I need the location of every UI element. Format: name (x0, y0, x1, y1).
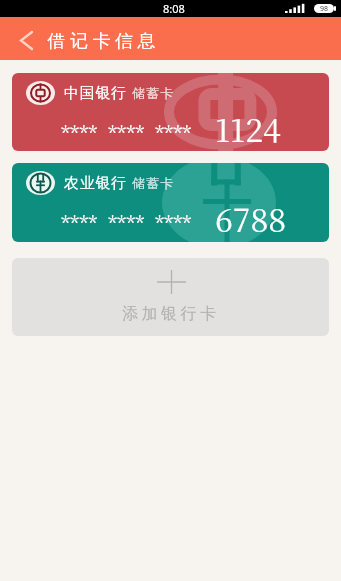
button[interactable]: 农业银行 (12, 163, 329, 242)
staticText: **** (155, 118, 192, 145)
button[interactable]: 添加银行卡 (12, 258, 329, 336)
staticText: 中国银行 (64, 84, 127, 103)
staticText: 6788 (215, 195, 287, 241)
staticText: **** (155, 208, 192, 235)
staticText: 借记卡信息 (45, 30, 158, 53)
button[interactable]: Back (6, 17, 46, 60)
staticText: **** (108, 118, 145, 145)
staticText: **** (61, 118, 98, 145)
staticText: 储蓄卡 (132, 175, 175, 191)
staticText: 8:08 (163, 1, 185, 16)
staticText: 98 (320, 4, 329, 13)
staticText: 储蓄卡 (132, 85, 175, 101)
button[interactable]: 中国银行 (12, 73, 329, 151)
staticText: 添加银行卡 (122, 304, 220, 324)
staticText: 1124 (215, 105, 281, 151)
staticText: **** (61, 208, 98, 235)
staticText: **** (108, 208, 145, 235)
staticText: 农业银行 (64, 174, 127, 193)
